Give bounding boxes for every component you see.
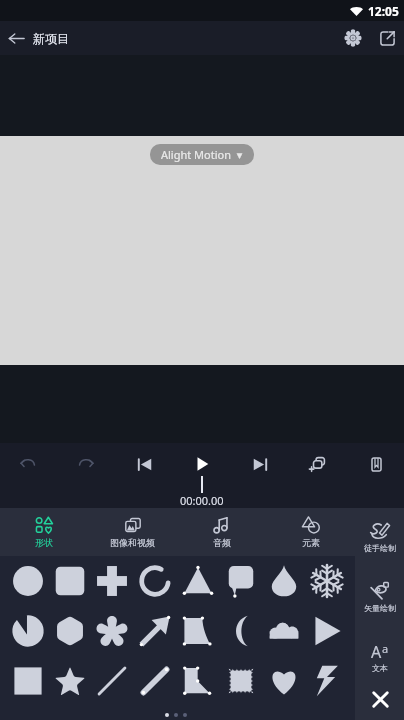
staticText: 文本	[372, 663, 388, 673]
button[interactable]: Shape 2	[49, 556, 91, 606]
button[interactable]: Bookmark	[358, 446, 394, 482]
button[interactable]: Shape 20	[133, 656, 176, 706]
button[interactable]: 音频	[177, 508, 266, 556]
button[interactable]: Shape 21	[176, 656, 219, 706]
button[interactable]: Export	[370, 21, 404, 55]
button[interactable]: Shape 9	[7, 606, 49, 656]
button[interactable]: Shape 1	[7, 556, 49, 606]
staticText: Alight Motion ▾	[161, 147, 243, 162]
button[interactable]: Alight Motion ▾	[150, 144, 254, 165]
button[interactable]: Shape 12	[133, 606, 176, 656]
button[interactable]: Undo	[10, 446, 46, 482]
button[interactable]: 图像和视频	[88, 508, 177, 556]
button[interactable]: 徒手绘制	[355, 520, 404, 553]
button[interactable]: A	[355, 641, 404, 673]
staticText: 00:00.00	[180, 493, 224, 508]
button[interactable]: Skip to start	[126, 446, 162, 482]
button[interactable]: Shape 7	[262, 556, 305, 606]
button[interactable]: Shape 14	[219, 606, 262, 656]
staticText: 徒手绘制	[364, 543, 396, 553]
button[interactable]: Shape 13	[176, 606, 219, 656]
staticText: A	[371, 641, 382, 663]
button[interactable]: Shape 15	[262, 606, 305, 656]
button[interactable]: Duplicate	[300, 446, 336, 482]
button[interactable]: Shape 4	[133, 556, 176, 606]
button[interactable]: Shape 18	[49, 656, 91, 706]
button[interactable]: Skip to end	[242, 446, 278, 482]
button[interactable]: Shape 24	[305, 656, 348, 706]
staticText: 元素	[302, 537, 320, 548]
button[interactable]: Shape 11	[91, 606, 133, 656]
button[interactable]: Close	[360, 679, 400, 719]
button[interactable]: Play	[184, 446, 220, 482]
button[interactable]: Shape 16	[305, 606, 348, 656]
button[interactable]: Settings	[336, 21, 370, 55]
button[interactable]: 矢量绘制	[355, 580, 404, 613]
button[interactable]: Shape 23	[262, 656, 305, 706]
button[interactable]: 形状	[0, 508, 88, 556]
staticText: 形状	[35, 537, 53, 548]
button[interactable]: Shape 6	[219, 556, 262, 606]
staticText: a	[382, 641, 389, 656]
staticText: 音频	[213, 537, 231, 548]
button[interactable]: Shape 17	[7, 656, 49, 706]
staticText: 12:05	[368, 3, 399, 19]
button[interactable]: Shape 5	[176, 556, 219, 606]
button[interactable]: Shape 10	[49, 606, 91, 656]
button[interactable]: Shape 8	[305, 556, 348, 606]
button[interactable]: Shape 3	[91, 556, 133, 606]
button[interactable]: Back	[0, 21, 33, 55]
staticText: 新项目	[33, 31, 69, 46]
button[interactable]: Shape 22	[219, 656, 262, 706]
button[interactable]: Redo	[68, 446, 104, 482]
staticText: 矢量绘制	[364, 603, 396, 613]
button[interactable]: Shape 19	[91, 656, 133, 706]
button[interactable]: 元素	[266, 508, 355, 556]
staticText: 图像和视频	[110, 537, 155, 548]
